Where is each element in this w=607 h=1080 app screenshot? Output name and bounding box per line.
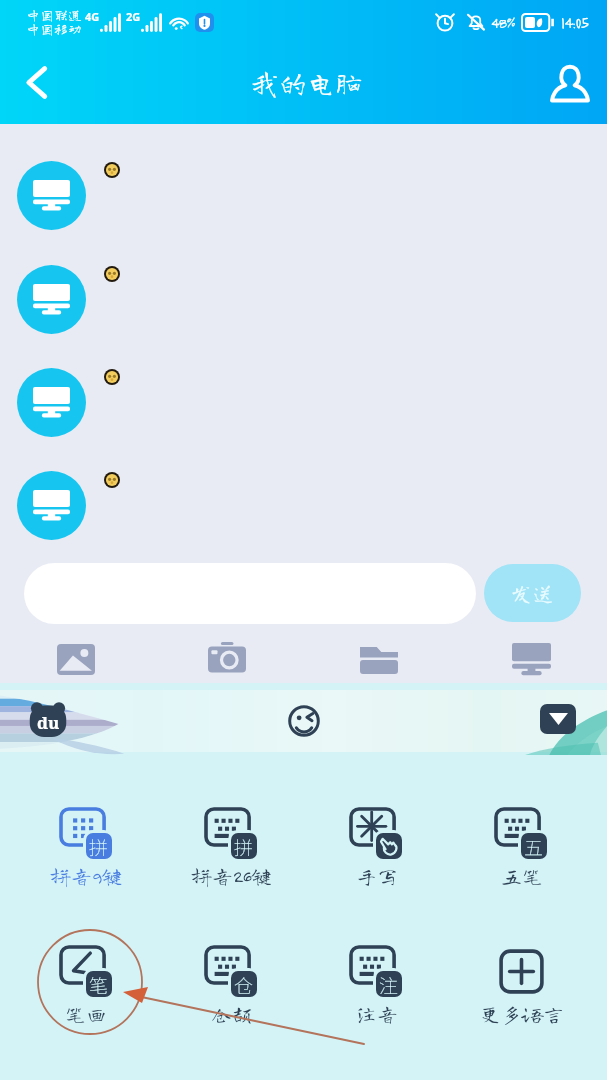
button[interactable]: Hide keyboard	[540, 704, 576, 734]
staticText: 手写	[356, 866, 398, 887]
button[interactable]: Files	[303, 634, 455, 684]
button[interactable]: Camera	[151, 634, 303, 684]
staticText: 拼	[234, 833, 254, 859]
staticText: 仓颉	[211, 1004, 253, 1025]
button[interactable]: Computer contact	[17, 161, 86, 230]
button[interactable]: Back	[12, 58, 60, 106]
button[interactable]: 拼	[159, 809, 304, 899]
button[interactable]: 五	[449, 809, 594, 899]
staticText: 14:05	[561, 13, 588, 32]
staticText: 注	[379, 971, 399, 997]
staticText: 4G	[85, 9, 100, 24]
button[interactable]: 发送	[484, 564, 581, 622]
button[interactable]: 仓	[159, 947, 304, 1037]
button[interactable]: 手写	[304, 809, 449, 899]
staticText: 拼音9键	[50, 866, 123, 887]
button[interactable]: Message input	[24, 563, 476, 624]
staticText: 笔画	[65, 1004, 107, 1025]
staticText: 2G	[126, 9, 141, 24]
button[interactable]: Gallery	[0, 634, 151, 684]
staticText: 我的电脑	[251, 68, 364, 96]
button[interactable]: Emoji	[282, 699, 326, 743]
button[interactable]: 拼	[13, 809, 159, 899]
staticText: 五笔	[501, 866, 543, 887]
staticText: 48%	[491, 13, 515, 31]
button[interactable]: Computer contact	[17, 368, 86, 437]
staticText: 中国联通	[26, 8, 82, 22]
button[interactable]: Baidu menu	[29, 702, 67, 737]
button[interactable]: Computer contact	[17, 265, 86, 334]
staticText: 发送	[510, 582, 555, 604]
button[interactable]: Computer contact	[17, 471, 86, 540]
button[interactable]: Computer	[455, 634, 607, 684]
button[interactable]: 更多语言	[449, 947, 594, 1037]
staticText: 更多语言	[480, 1004, 564, 1025]
staticText: 拼	[89, 833, 109, 859]
button[interactable]: Profile	[546, 59, 594, 107]
staticText: 注音	[356, 1004, 398, 1025]
staticText: 中国移动	[26, 22, 82, 36]
staticText: 仓	[234, 971, 254, 997]
staticText: 笔	[89, 971, 109, 997]
button[interactable]: 注	[304, 947, 449, 1037]
button[interactable]: 笔	[13, 947, 159, 1037]
staticText: 拼音26键	[191, 866, 272, 887]
staticText: du	[37, 711, 60, 734]
staticText: 五	[524, 833, 544, 859]
